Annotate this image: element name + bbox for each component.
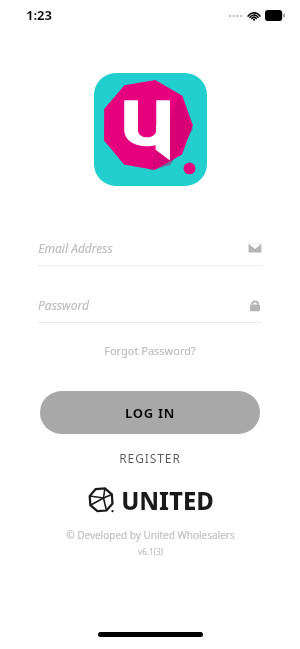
staticText: Forgot Password? <box>104 343 196 358</box>
button[interactable]: Password <box>38 297 262 323</box>
button[interactable]: Email Address <box>38 240 262 266</box>
button[interactable]: Forgot Password? <box>96 339 204 362</box>
other: Email <box>248 241 262 255</box>
staticText: © Developed by United Wholesalers <box>66 528 235 542</box>
staticText: Password <box>38 297 89 313</box>
staticText: REGISTER <box>119 450 181 466</box>
staticText: UNITED <box>121 484 214 517</box>
staticText: LOG IN <box>125 404 175 422</box>
staticText: Email Address <box>38 240 113 256</box>
other: Password <box>248 298 262 312</box>
staticText: v6.1(3) <box>138 546 163 557</box>
button[interactable]: REGISTER <box>109 446 191 470</box>
button[interactable]: App logo <box>94 73 207 186</box>
staticText: 1:23 <box>26 6 52 24</box>
button[interactable]: LOG IN <box>40 391 260 434</box>
